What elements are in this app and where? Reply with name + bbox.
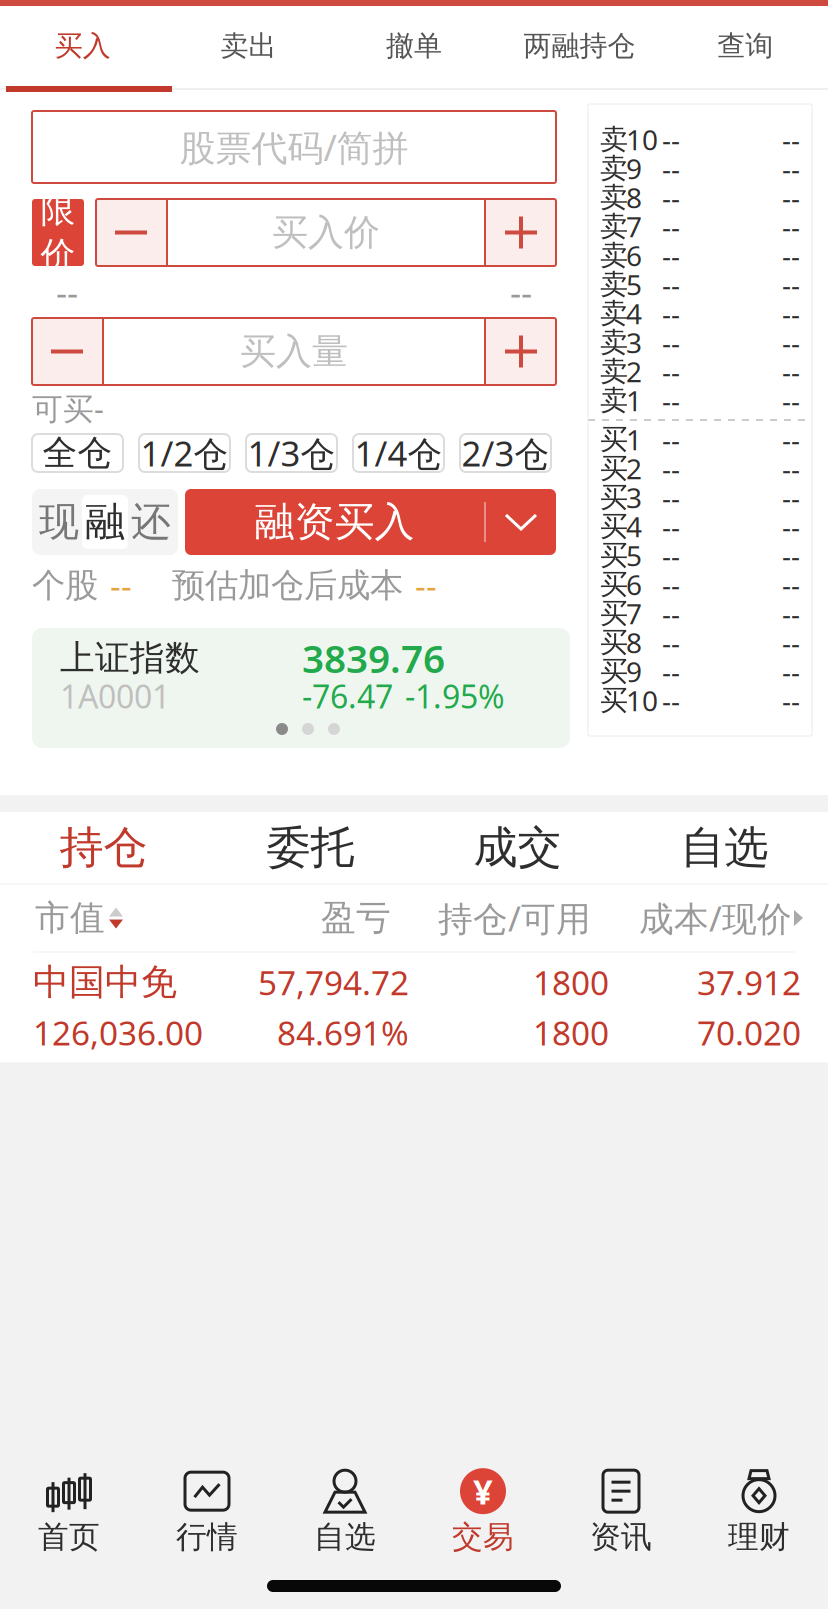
staticText: 7: [626, 208, 642, 245]
staticText: 70.020: [697, 1010, 801, 1055]
staticText: 卖: [600, 209, 628, 244]
staticText: --: [662, 508, 680, 545]
staticText: --: [782, 382, 800, 419]
button[interactable]: 限: [32, 199, 84, 266]
button[interactable]: 现: [36, 495, 82, 549]
staticText: 股票代码/简拼: [179, 123, 408, 171]
button[interactable]: Decrease quantity: [32, 318, 102, 385]
staticText: --: [782, 595, 800, 632]
staticText: 全仓: [42, 432, 112, 474]
button[interactable]: 1/2仓: [139, 434, 230, 472]
staticText: 持仓: [59, 820, 147, 874]
staticText: 37.912: [697, 960, 801, 1004]
staticText: --: [782, 479, 800, 516]
staticText: 融资买入: [254, 497, 414, 546]
staticText: --: [782, 324, 800, 361]
button[interactable]: 理财: [690, 1470, 828, 1556]
button[interactable]: 撤单: [331, 6, 497, 86]
button[interactable]: 资讯: [552, 1470, 690, 1556]
staticText: --: [782, 266, 800, 303]
button[interactable]: Increase quantity: [486, 318, 556, 385]
staticText: 自选: [314, 1518, 376, 1556]
staticText: --: [510, 269, 532, 315]
staticText: --: [662, 595, 680, 632]
staticText: 卖: [600, 122, 628, 157]
staticText: --: [782, 508, 800, 545]
staticText: 买: [600, 538, 628, 573]
staticText: --: [782, 682, 800, 719]
staticText: 5: [626, 266, 642, 303]
staticText: --: [662, 237, 680, 274]
staticText: 卖: [600, 151, 628, 186]
button[interactable]: 融资买入: [185, 489, 556, 555]
button[interactable]: Increase price: [486, 199, 556, 266]
staticText: 卖: [600, 354, 628, 389]
staticText: --: [662, 150, 680, 187]
staticText: --: [782, 295, 800, 332]
staticText: 8: [626, 624, 642, 661]
button[interactable]: 首页: [0, 1470, 138, 1556]
staticText: 预估加仓后成本: [172, 565, 403, 606]
staticText: 买: [600, 625, 628, 660]
button[interactable]: 还: [128, 495, 174, 549]
staticText: --: [782, 121, 800, 158]
button[interactable]: 1/3仓: [246, 434, 337, 472]
staticText: 10: [626, 682, 658, 719]
staticText: 10: [626, 121, 658, 158]
staticText: 126,036.00: [33, 1010, 203, 1055]
button[interactable]: 行情: [138, 1470, 276, 1556]
staticText: 行情: [176, 1518, 238, 1556]
staticText: 1800: [533, 1010, 609, 1055]
button[interactable]: 两融持仓: [497, 6, 662, 86]
staticText: 买: [600, 567, 628, 602]
staticText: 持仓/可用: [438, 895, 591, 941]
staticText: 成本/现价: [639, 895, 792, 941]
staticText: 2: [626, 450, 642, 487]
staticText: --: [782, 450, 800, 487]
staticText: 卖: [600, 383, 628, 418]
staticText: 理财: [728, 1518, 790, 1556]
staticText: --: [782, 566, 800, 603]
button[interactable]: 2/3仓: [460, 434, 551, 472]
staticText: 撤单: [386, 29, 442, 63]
button[interactable]: 1/4仓: [353, 434, 444, 472]
button[interactable]: 查询: [662, 6, 828, 86]
button[interactable]: ¥: [414, 1470, 552, 1556]
staticText: 1A0001: [60, 675, 170, 717]
staticText: 5: [626, 537, 642, 574]
staticText: 买: [600, 596, 628, 631]
staticText: --: [662, 653, 680, 690]
button[interactable]: 卖出: [166, 6, 331, 86]
staticText: 限: [40, 189, 75, 231]
staticText: 买: [600, 683, 628, 718]
button[interactable]: 股票代码/简拼: [32, 111, 556, 183]
staticText: 买: [600, 654, 628, 689]
staticText: 交易: [452, 1518, 514, 1556]
staticText: 融: [85, 497, 125, 546]
button[interactable]: 自选: [276, 1470, 414, 1556]
staticText: 中国中免: [33, 960, 177, 1004]
button[interactable]: 成交: [414, 811, 621, 883]
staticText: --: [662, 208, 680, 245]
button[interactable]: 持仓: [0, 811, 207, 883]
staticText: 价: [40, 233, 75, 276]
button[interactable]: Decrease price: [96, 199, 166, 266]
staticText: 9: [626, 150, 642, 187]
staticText: --: [662, 295, 680, 332]
staticText: 自选: [680, 820, 768, 874]
button[interactable]: 上证指数: [32, 628, 570, 748]
button[interactable]: 委托: [207, 811, 414, 883]
staticText: --: [782, 353, 800, 390]
button[interactable]: 融: [82, 495, 128, 549]
staticText: 3: [626, 479, 642, 516]
staticText: -1.95%: [405, 675, 505, 717]
staticText: 3839.76: [302, 632, 445, 684]
button[interactable]: 自选: [621, 811, 828, 883]
staticText: 盈亏: [321, 897, 391, 939]
staticText: 首页: [38, 1518, 100, 1556]
staticText: --: [662, 624, 680, 661]
staticText: --: [782, 421, 800, 458]
button[interactable]: 买入: [0, 6, 166, 86]
button[interactable]: 全仓: [32, 434, 123, 472]
staticText: 1: [626, 421, 642, 458]
